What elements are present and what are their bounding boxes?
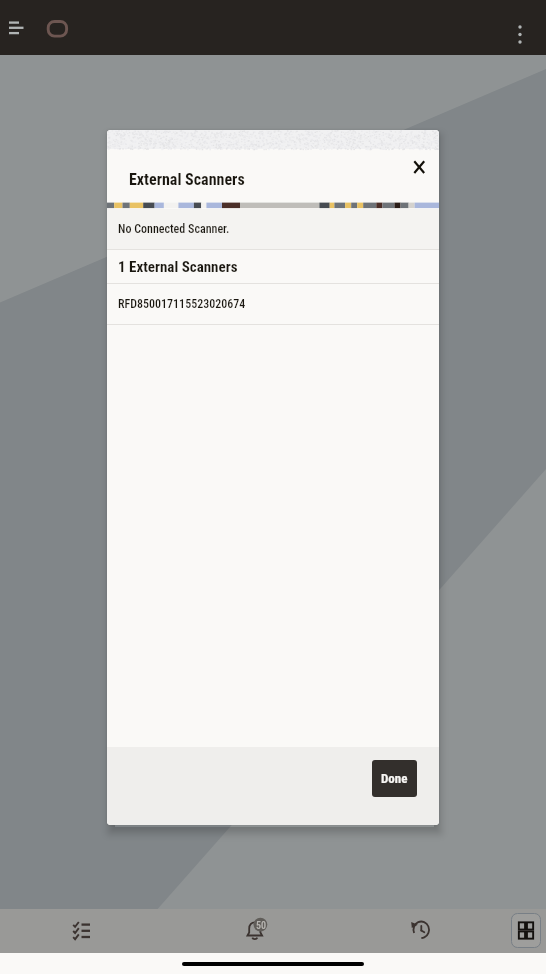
staticText: Done (381, 771, 408, 786)
button[interactable]: RFD850017115523020674 (107, 284, 439, 324)
button[interactable]: More options (502, 7, 542, 47)
button[interactable]: Navigation menu (0, 7, 40, 47)
button[interactable]: History (410, 919, 432, 941)
button[interactable]: Notifications (244, 913, 270, 939)
staticText: No Connected Scanner. (118, 222, 230, 236)
button[interactable]: Done (372, 760, 417, 797)
staticText: 1 External Scanners (118, 258, 238, 276)
button[interactable]: Tasks (72, 920, 94, 942)
button[interactable]: 1 External Scanners (107, 250, 439, 283)
button[interactable]: Apps (511, 912, 541, 949)
staticText: External Scanners (129, 170, 245, 189)
button[interactable]: Close (404, 149, 436, 181)
staticText: 50 (256, 920, 267, 932)
staticText: RFD850017115523020674 (118, 297, 246, 311)
button[interactable]: No Connected Scanner. (107, 209, 439, 249)
